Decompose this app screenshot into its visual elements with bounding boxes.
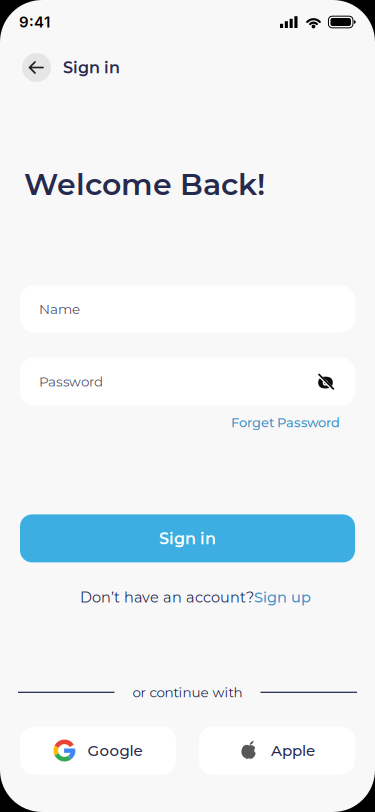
staticText: Welcome Back!: [24, 166, 265, 203]
staticText: Sign in: [159, 529, 216, 548]
button[interactable]: Sign up: [254, 588, 311, 606]
staticText: Apple: [271, 741, 315, 760]
button[interactable]: [22, 53, 51, 82]
staticText: 9:41: [19, 13, 50, 31]
button[interactable]: Password: [20, 358, 355, 406]
staticText: Google: [87, 741, 142, 760]
staticText: Sign up: [254, 588, 311, 606]
staticText: Name: [39, 301, 80, 317]
button[interactable]: Google: [20, 726, 176, 774]
staticText: Forget Password: [231, 415, 340, 430]
staticText: Sign in: [63, 58, 120, 77]
staticText: or continue with: [132, 684, 242, 701]
staticText: Don’t have an account?: [80, 588, 254, 606]
button[interactable]: Name: [20, 286, 355, 333]
button[interactable]: Forget Password: [231, 415, 340, 430]
button[interactable]: Sign in: [20, 514, 355, 562]
button[interactable]: Apple: [199, 726, 355, 774]
staticText: Password: [39, 373, 103, 390]
